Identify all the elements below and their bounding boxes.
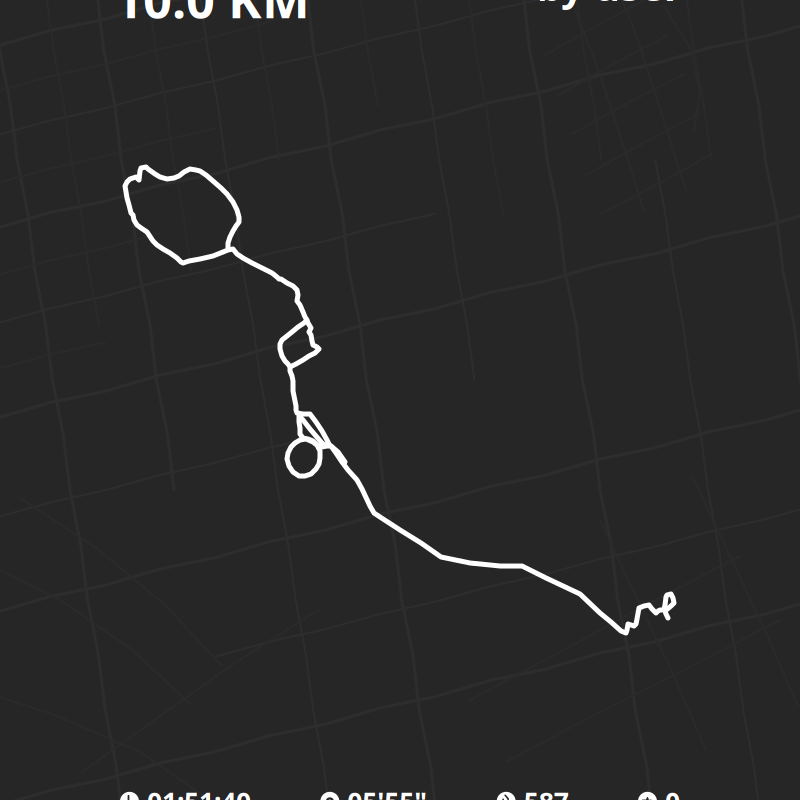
button[interactable]: 587 [497, 784, 569, 800]
button[interactable]: 01:51:40 [120, 784, 251, 800]
staticText: 10.0 KM [114, 0, 310, 32]
staticText: 05'55" [347, 784, 427, 800]
staticText: 01:51:40 [147, 784, 251, 800]
button[interactable]: 05'55" [320, 784, 427, 800]
staticText: 587 [524, 784, 569, 800]
staticText: 0 [665, 784, 680, 800]
staticText: by user [537, 0, 682, 12]
button[interactable]: 0 [638, 784, 680, 800]
